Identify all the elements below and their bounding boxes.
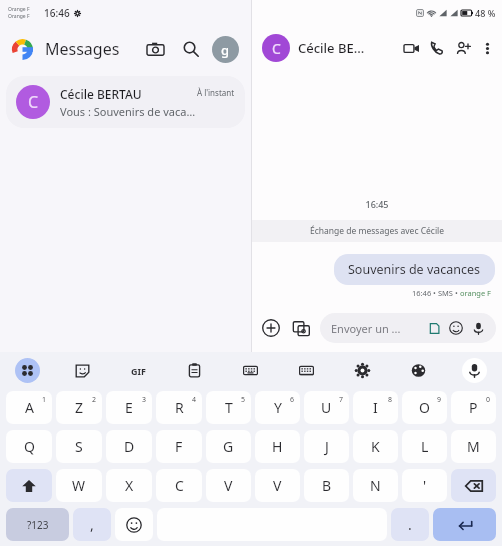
button[interactable]: H — [255, 430, 300, 463]
staticText: L — [421, 437, 429, 456]
staticText: 5 — [241, 395, 246, 405]
staticText: Échange de messages avec Cécile — [310, 225, 445, 237]
button[interactable]: T — [206, 391, 251, 424]
staticText: Cécile BE... — [298, 39, 365, 57]
button[interactable]: Theme — [390, 352, 446, 388]
staticText: R — [175, 398, 184, 417]
button[interactable]: C — [6, 76, 245, 128]
button[interactable]: Account — [212, 36, 239, 63]
staticText: I — [373, 398, 378, 417]
button[interactable]: Envoyer un ... — [320, 313, 496, 343]
staticText: M — [467, 437, 480, 456]
button[interactable]: L — [402, 430, 447, 463]
button[interactable]: Shift — [6, 469, 52, 502]
button[interactable]: I — [353, 391, 398, 424]
staticText: Cécile BERTAU — [60, 86, 142, 102]
button[interactable]: A — [6, 391, 52, 424]
button[interactable]: Clipboard — [166, 352, 222, 388]
staticText: 2 — [92, 395, 97, 405]
button[interactable]: ?123 — [6, 508, 69, 541]
staticText: C — [175, 476, 184, 495]
staticText: Vous : Souvenirs de vacances — [60, 104, 197, 119]
staticText: X — [125, 476, 134, 495]
button[interactable]: Keyboard layout — [278, 352, 334, 388]
button[interactable]: GIF — [110, 352, 166, 388]
button[interactable]: Add attachment — [258, 315, 284, 341]
button[interactable]: Backspace — [451, 469, 496, 502]
button[interactable]: V — [255, 469, 300, 502]
button[interactable]: X — [106, 469, 152, 502]
staticText: 3 — [142, 395, 147, 405]
staticText: B — [322, 476, 332, 495]
staticText: Orange F — [8, 6, 30, 13]
button[interactable]: G — [206, 430, 251, 463]
staticText: . — [408, 515, 412, 534]
button[interactable]: S — [56, 430, 102, 463]
button[interactable]: Emoji — [115, 508, 153, 541]
button[interactable]: R — [156, 391, 202, 424]
staticText: Z — [75, 398, 84, 417]
button[interactable]: ' — [402, 469, 447, 502]
button[interactable]: More options — [476, 37, 498, 59]
button[interactable]: Q — [6, 430, 52, 463]
staticText: 6 — [290, 395, 295, 405]
staticText: H — [272, 437, 283, 456]
button[interactable]: Video call — [398, 35, 424, 61]
staticText: C — [28, 91, 39, 113]
button[interactable]: F — [156, 430, 202, 463]
button[interactable]: D — [106, 430, 152, 463]
staticText: 16:45 — [252, 198, 502, 210]
staticText: 0 — [486, 395, 491, 405]
staticText: S — [75, 437, 83, 456]
button[interactable]: E — [106, 391, 152, 424]
button[interactable]: . — [391, 508, 429, 541]
staticText: W — [72, 476, 86, 495]
button[interactable]: Search — [176, 34, 206, 64]
staticText: P — [469, 398, 478, 417]
staticText: À l'instant — [197, 87, 235, 98]
button[interactable]: Call — [424, 35, 450, 61]
button[interactable]: K — [353, 430, 398, 463]
staticText: Souvenirs de vacances — [348, 261, 481, 278]
button[interactable]: Add people — [450, 35, 476, 61]
button[interactable]: N — [353, 469, 398, 502]
staticText: 8 — [388, 395, 393, 405]
button[interactable]: J — [304, 430, 349, 463]
staticText: N — [370, 476, 381, 495]
button[interactable]: Settings — [334, 352, 390, 388]
staticText: 7 — [339, 395, 344, 405]
staticText: E — [125, 398, 133, 417]
button[interactable]: C — [156, 469, 202, 502]
button[interactable]: Z — [56, 391, 102, 424]
staticText: 48 % — [475, 7, 496, 19]
button[interactable]: Enter — [433, 508, 496, 541]
staticText: Q — [24, 437, 35, 456]
button[interactable]: Y — [255, 391, 300, 424]
staticText: U — [321, 398, 332, 417]
button[interactable]: P — [451, 391, 496, 424]
button[interactable]: Apps — [0, 352, 55, 388]
button[interactable]: W — [56, 469, 102, 502]
staticText: J — [325, 437, 329, 456]
staticText: T — [225, 398, 233, 417]
button[interactable]: Gallery — [288, 315, 314, 341]
button[interactable]: Keyboard — [222, 352, 278, 388]
button[interactable]: Souvenirs de vacances — [334, 254, 495, 285]
staticText: 16:46 — [44, 6, 70, 20]
button[interactable]: Voice input — [446, 352, 502, 388]
staticText: F — [175, 437, 183, 456]
staticText: C — [272, 39, 281, 58]
staticText: Messages — [45, 38, 120, 60]
staticText: ?123 — [27, 518, 49, 532]
button[interactable]: O — [402, 391, 447, 424]
button[interactable]: C — [262, 34, 290, 62]
button[interactable]: U — [304, 391, 349, 424]
button[interactable]: M — [451, 430, 496, 463]
button[interactable]: B — [304, 469, 349, 502]
button[interactable]: Stickers — [55, 352, 110, 388]
button[interactable]: Camera — [140, 34, 170, 64]
staticText: A — [25, 398, 34, 417]
button[interactable]: , — [73, 508, 111, 541]
button[interactable]: V — [206, 469, 251, 502]
